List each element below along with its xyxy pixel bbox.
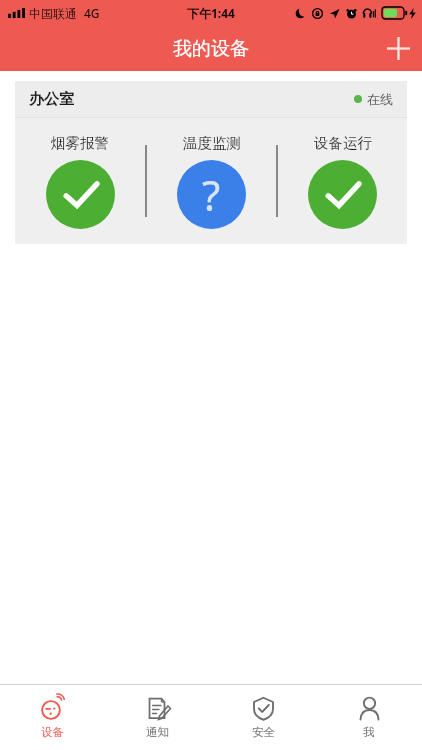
staticText: 温度监测 (183, 134, 241, 152)
button[interactable]: 办公室 (15, 81, 407, 244)
button[interactable]: 设备 (0, 685, 105, 750)
staticText: 烟雾报警 (51, 134, 109, 152)
staticText: 4G (84, 5, 100, 21)
staticText: 通知 (146, 725, 169, 739)
staticText: 安全 (252, 725, 275, 739)
button[interactable]: 通知 (105, 685, 210, 750)
staticText: ? (202, 166, 221, 223)
staticText: 下午1:44 (187, 5, 235, 21)
staticText: 办公室 (29, 90, 74, 109)
button[interactable]: 烟雾报警 (15, 118, 145, 244)
staticText: 设备运行 (314, 134, 372, 152)
staticText: 我 (363, 725, 375, 739)
staticText: 中国联通 (29, 6, 77, 21)
staticText: 设备 (41, 725, 64, 739)
staticText: 我的设备 (173, 37, 249, 61)
button[interactable]: 我 (316, 685, 422, 750)
button[interactable]: Add device (374, 26, 422, 71)
button[interactable]: 安全 (210, 685, 316, 750)
button[interactable]: 温度监测 (147, 118, 276, 244)
staticText: 在线 (367, 91, 393, 107)
button[interactable]: 设备运行 (278, 118, 407, 244)
